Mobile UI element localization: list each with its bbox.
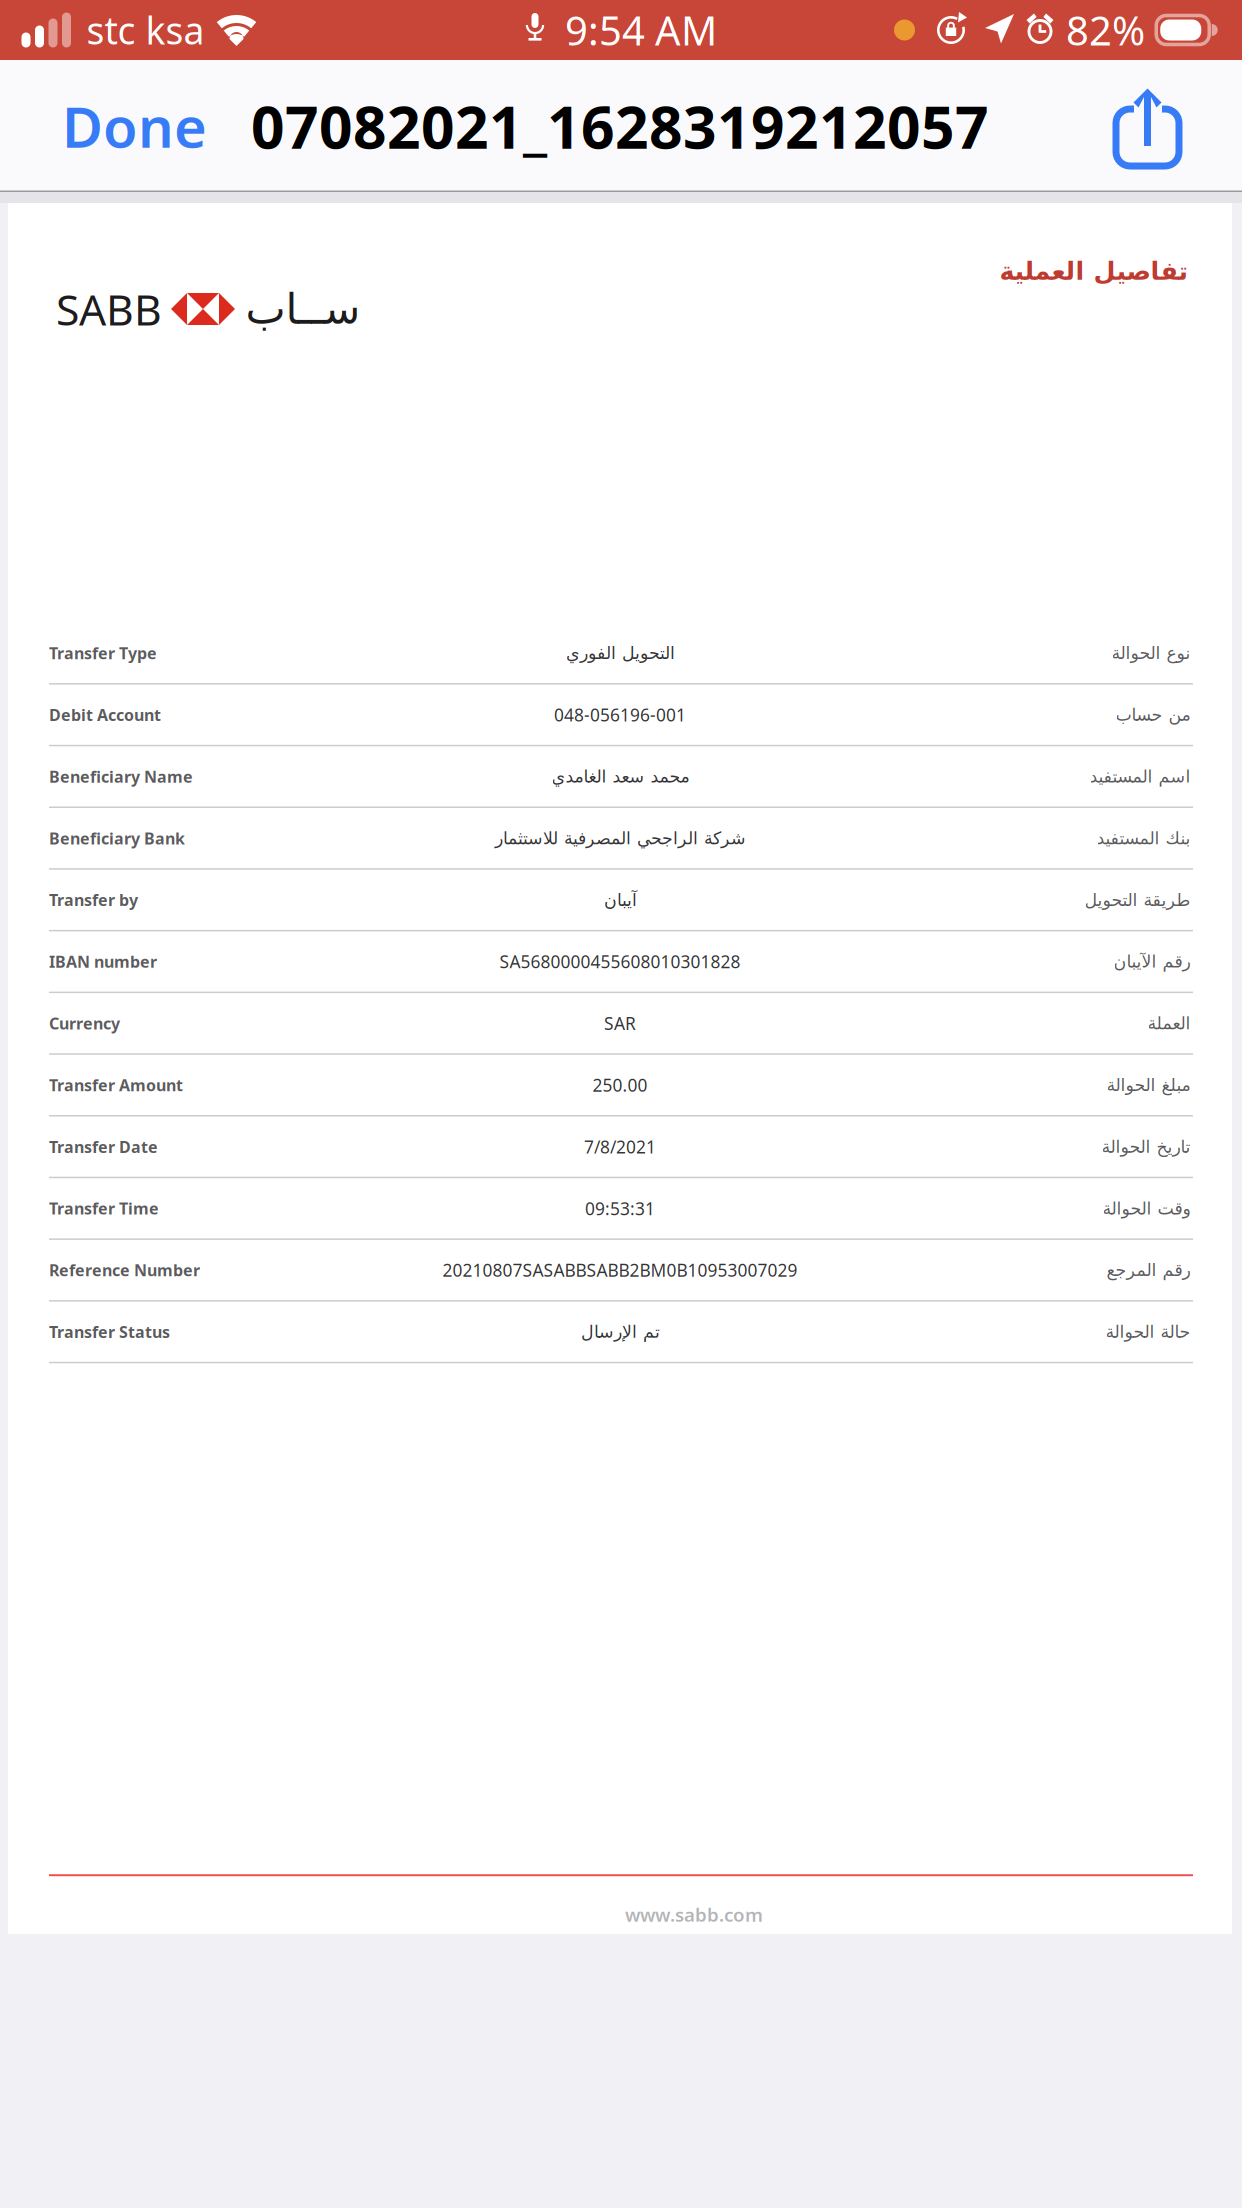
staticText: Transfer Amount <box>49 1074 183 1096</box>
staticText: Done <box>62 89 207 163</box>
staticText: Beneficiary Bank <box>49 828 185 849</box>
staticText: رقم الآيبان <box>1113 952 1190 971</box>
staticText: SA5680000455608010301828 <box>499 950 740 973</box>
staticText: محمد سعد الغامدي <box>551 767 689 786</box>
staticText: 250.00 <box>592 1073 647 1096</box>
staticText: تم الإرسال <box>580 1322 659 1342</box>
staticText: ســاب <box>245 285 360 333</box>
staticText: 20210807SASABBSABB2BM0B10953007029 <box>442 1259 797 1282</box>
staticText: حالة الحوالة <box>1105 1322 1190 1342</box>
staticText: شركة الراجحي المصرفية للاستثمار <box>494 828 745 848</box>
staticText: www.sabb.com <box>625 1902 763 1927</box>
staticText: 9:54 AM <box>565 3 717 56</box>
staticText: بنك المستفيد <box>1096 828 1190 848</box>
staticText: Debit Account <box>49 704 161 725</box>
staticText: Transfer Status <box>49 1321 170 1342</box>
staticText: العملة <box>1147 1013 1190 1033</box>
staticText: 7/8/2021 <box>584 1135 656 1158</box>
staticText: SABB <box>56 281 162 337</box>
staticText: 07082021_1628319212057 <box>251 87 989 165</box>
staticText: تفاصيل العملية <box>999 257 1188 285</box>
button[interactable]: Share <box>1094 60 1242 192</box>
staticText: اسم المستفيد <box>1089 767 1190 786</box>
staticText: آيبان <box>603 890 636 910</box>
staticText: 82% <box>1066 3 1145 56</box>
staticText: رقم المرجع <box>1106 1260 1190 1280</box>
staticText: من حساب <box>1115 705 1190 725</box>
staticText: 048-056196-001 <box>554 703 686 726</box>
button[interactable]: Done <box>0 60 251 192</box>
staticText: نوع الحوالة <box>1111 643 1190 663</box>
staticText: SAR <box>604 1012 636 1035</box>
staticText: Transfer by <box>49 889 138 910</box>
staticText: وقت الحوالة <box>1102 1199 1190 1218</box>
staticText: Transfer Time <box>49 1198 159 1219</box>
staticText: التحويل الفوري <box>565 643 674 663</box>
staticText: stc ksa <box>86 5 204 55</box>
staticText: طريقة التحويل <box>1084 890 1190 910</box>
staticText: مبلغ الحوالة <box>1106 1075 1190 1095</box>
staticText: Currency <box>49 1013 120 1034</box>
staticText: 09:53:31 <box>585 1197 655 1220</box>
staticText: Transfer Date <box>49 1136 158 1157</box>
staticText: IBAN number <box>49 951 157 972</box>
staticText: Reference Number <box>49 1259 200 1281</box>
staticText: تاريخ الحوالة <box>1101 1137 1190 1157</box>
staticText: Transfer Type <box>49 642 157 664</box>
staticText: Beneficiary Name <box>49 766 193 787</box>
